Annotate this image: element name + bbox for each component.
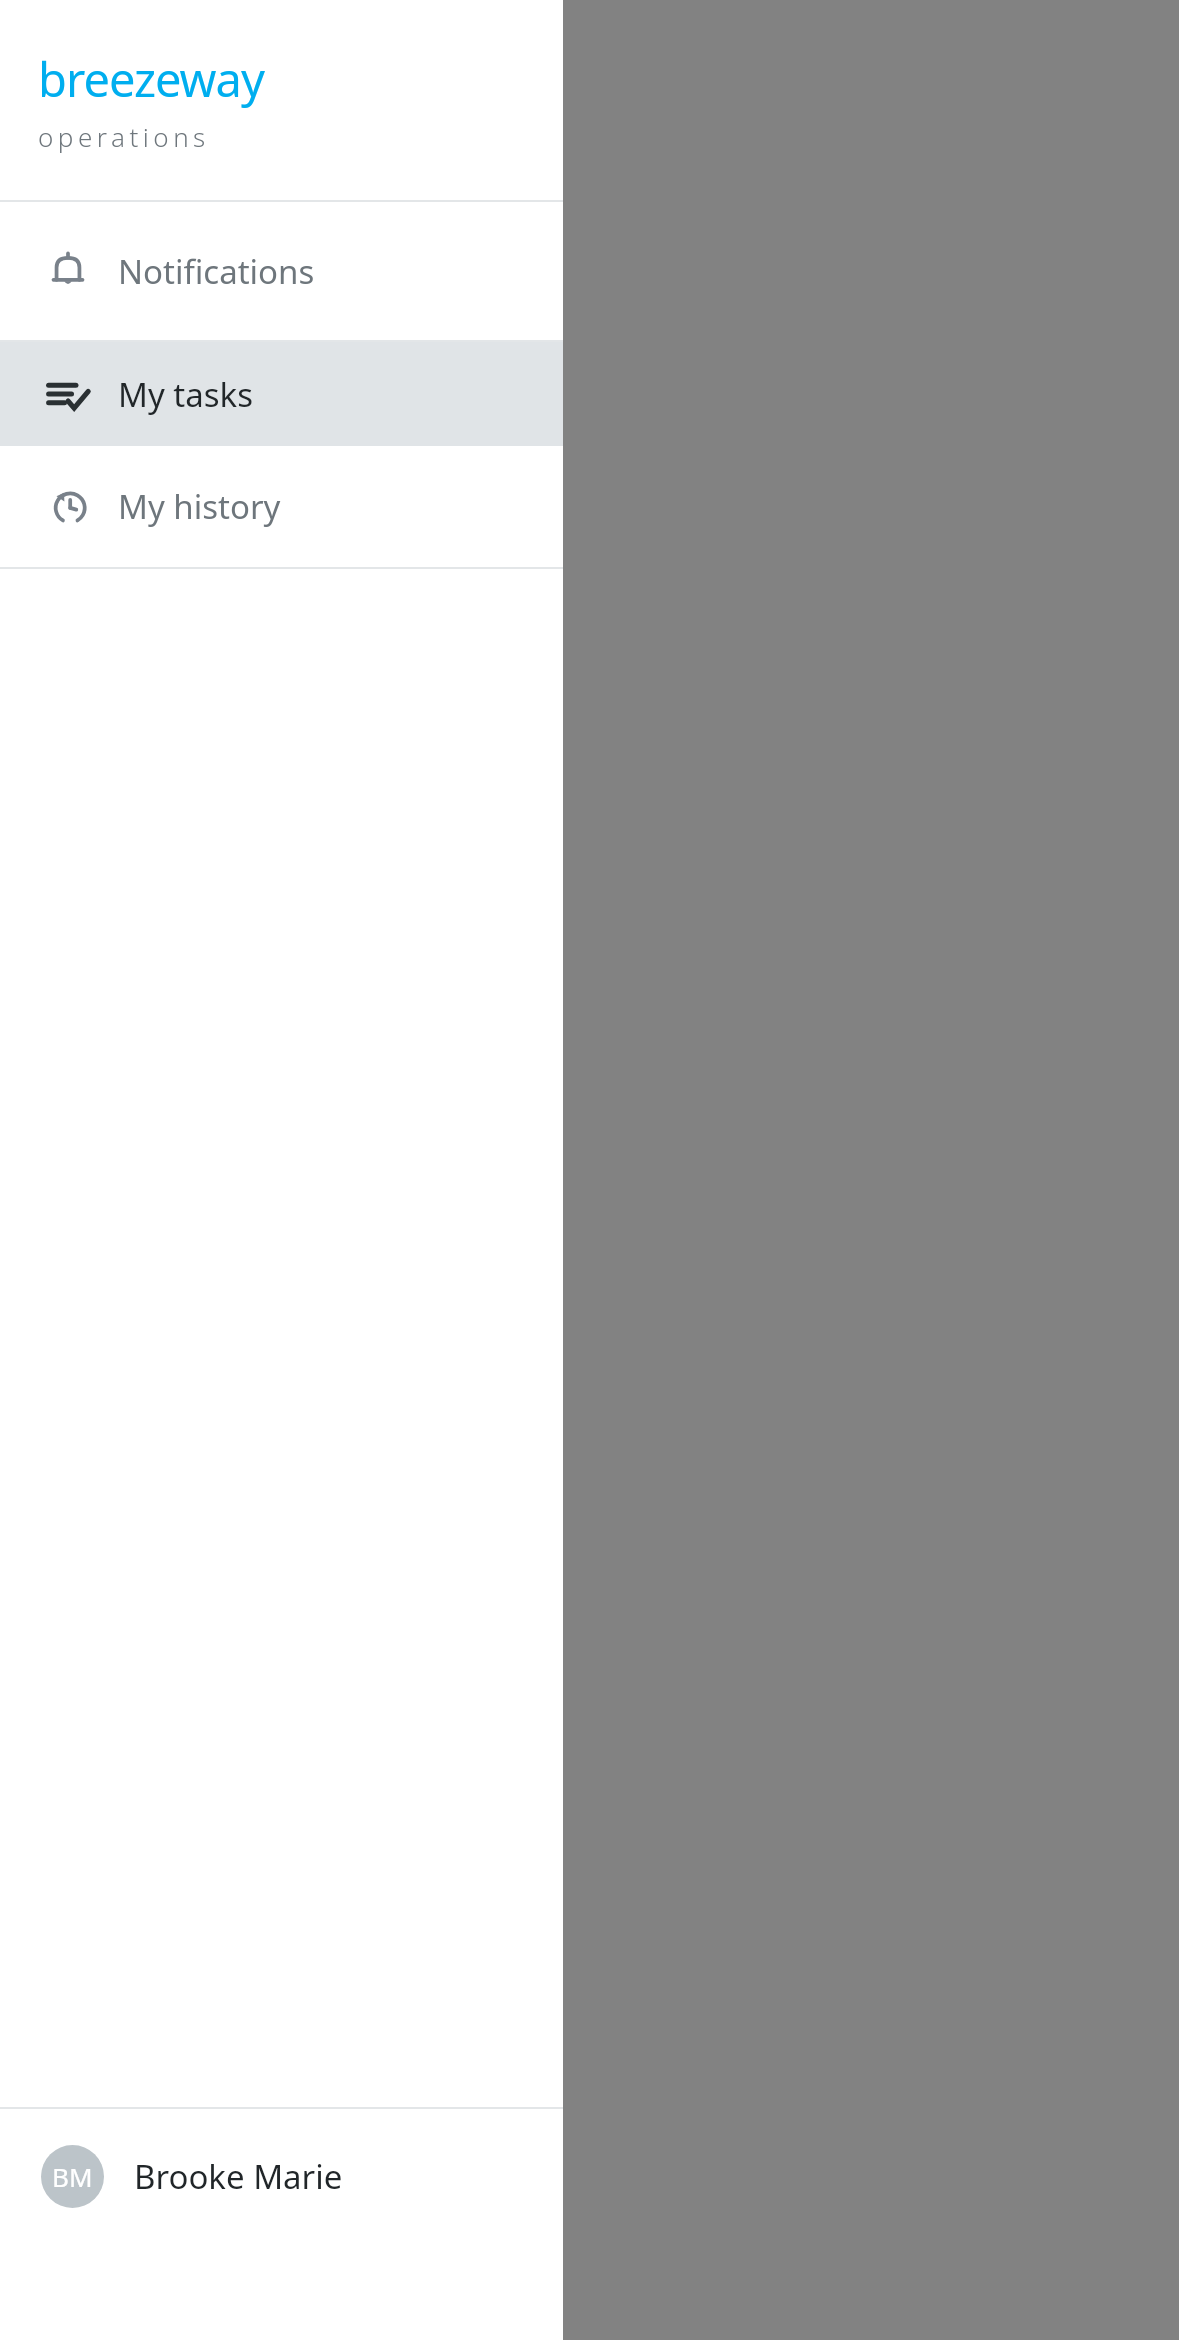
staticText: You have no assigned tasks. xyxy=(380,814,800,858)
staticText: Nothing to do today. xyxy=(386,735,793,792)
staticText: BM xyxy=(52,2159,93,2194)
staticText: My history xyxy=(118,484,281,529)
staticText: WEEK xyxy=(547,241,633,280)
button[interactable]: My tasks xyxy=(0,342,563,446)
button[interactable]: Notifications xyxy=(0,202,563,340)
button[interactable]: My history xyxy=(0,446,563,567)
staticText: My tasks xyxy=(118,372,254,417)
staticText: Notifications xyxy=(118,249,315,294)
staticText: TODAY xyxy=(146,241,248,280)
button[interactable]: WEEK xyxy=(393,225,786,295)
staticText: breezeway xyxy=(38,47,264,111)
button[interactable]: TODAY xyxy=(0,225,393,295)
staticText: Brooke Marie xyxy=(134,2154,343,2199)
staticText: operations xyxy=(38,119,210,154)
button[interactable]: BM xyxy=(0,2109,563,2244)
